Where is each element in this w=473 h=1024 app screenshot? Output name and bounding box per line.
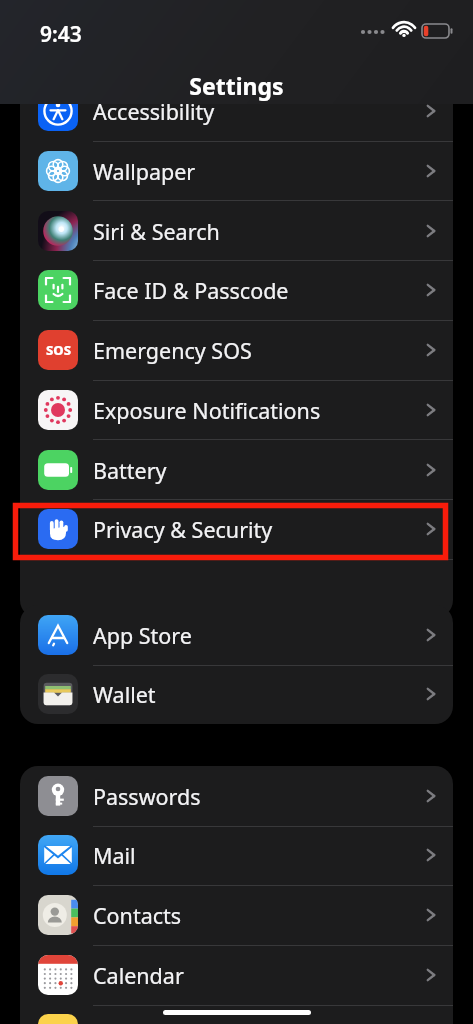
button[interactable]: Battery: [20, 440, 453, 500]
staticText: Wallet: [93, 680, 156, 709]
staticText: Privacy & Security: [93, 515, 273, 544]
staticText: Face ID & Passcode: [93, 276, 289, 305]
staticText: SOS: [46, 341, 71, 359]
staticText: Accessibility: [93, 97, 215, 126]
staticText: Wallpaper: [93, 157, 196, 186]
button[interactable]: Face ID & Passcode: [20, 260, 453, 320]
staticText: App Store: [93, 621, 192, 650]
button[interactable]: Privacy & Security: [20, 499, 453, 559]
button[interactable]: Accessibility: [20, 22, 453, 82]
staticText: Passwords: [93, 782, 201, 811]
button[interactable]: Accessibility: [20, 81, 453, 141]
staticText: Mail: [93, 841, 136, 870]
staticText: Siri & Search: [93, 217, 220, 246]
button[interactable]: Exposure Notifications: [20, 380, 453, 440]
button[interactable]: Wallet: [20, 664, 453, 724]
staticText: Settings: [0, 70, 473, 101]
button[interactable]: SOS: [20, 320, 453, 380]
button[interactable]: App Store: [20, 605, 453, 665]
button[interactable]: Mail: [20, 825, 453, 885]
staticText: 9:43: [40, 20, 82, 49]
button[interactable]: Siri & Search: [20, 201, 453, 261]
button[interactable]: Wallpaper: [20, 141, 453, 201]
staticText: Exposure Notifications: [93, 396, 321, 425]
staticText: Battery: [93, 456, 167, 485]
staticText: Calendar: [93, 961, 184, 990]
button[interactable]: Passwords: [20, 766, 453, 826]
button[interactable]: Calendar: [20, 945, 453, 1005]
button[interactable]: Contacts: [20, 885, 453, 945]
staticText: Emergency SOS: [93, 336, 252, 365]
staticText: Contacts: [93, 901, 182, 930]
